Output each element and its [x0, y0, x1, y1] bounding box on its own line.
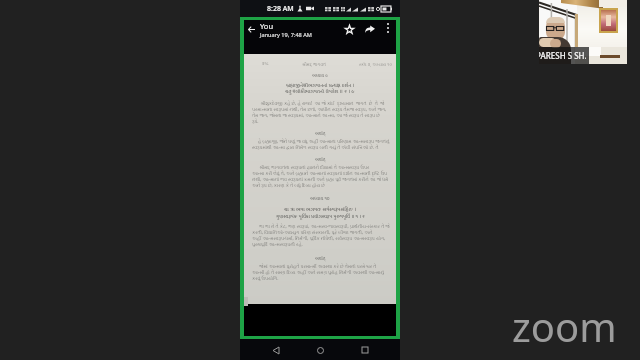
staticText: PARESH S SH... — [539, 50, 586, 61]
staticText: ૨૧૮ — [262, 62, 269, 66]
staticText: ચતુઃશ્લોકીભાગવતનો ઉપદેશ ॥ ૨ । ૯ — [285, 87, 355, 96]
staticText: કરવું ઉપયોગિ. — [252, 275, 279, 281]
staticText: ચા ત્રા ભવા ભગવતઃ સર્વસ્વરૂપસંહિતઃ । — [284, 205, 357, 214]
staticText: શ્રીમદ્ ભાગવતના સ્વરૂપનાં જ્ઞાનને દીક્ષા… — [252, 164, 390, 170]
staticText: અને રૂપ છે, કારણ કે તે બધું દિવ્ય હોય છે — [252, 182, 325, 188]
staticText: ગુણસ્વરૂપંકઃ પૂર્વિકા પ્રયોગસ્વરૂપ પુરુષ… — [276, 212, 365, 220]
button[interactable]: More options — [382, 22, 394, 34]
staticText: 8:28 AM — [267, 4, 294, 14]
staticText: તેમ જગ, જેમના જ સ્વરૂપમાં, આત્માને આત્મા… — [252, 112, 380, 118]
staticText: ભા ભા ને તે કેટ, ભણ સ્વરૂપાં, આત્મસ્વ-ભા… — [252, 223, 390, 229]
staticText: નથી, આત્માનાં ભવ સ્વરૂપનાં ક્રમની અને બ્… — [252, 176, 390, 182]
staticText: zoom — [512, 299, 617, 353]
staticText: પુરુષપૂર્વિ આત્મસ્વરૂપની રહે. — [252, 241, 303, 247]
staticText: અર્થાત્ — [315, 255, 326, 262]
staticText: બ્રહ્માજીનેશ્રીભગવાનનાં પ્રત્યક્ષ દર્શન … — [286, 81, 355, 90]
staticText: આત્મી હો તે સમગ્ર દિવ્ય અહીં અને સમગ્ર પ… — [252, 269, 390, 275]
staticText: January 19, 7:48 AM — [260, 31, 312, 39]
staticText: અર્થાત્ — [315, 156, 326, 163]
button[interactable]: Share — [363, 22, 377, 36]
staticText: You — [260, 21, 274, 31]
staticText: કરતી, વિદ્યાનિઓ-અદ્યયુગ પરિણ સંસ્કારની, … — [252, 229, 390, 235]
staticText: હે બ્રહ્માજી, જેને ઘણું જ વધુ અહીં આત્મા… — [252, 138, 390, 144]
button[interactable]: Navigate up — [244, 22, 258, 36]
button[interactable]: Back — [267, 341, 285, 359]
staticText: સ્વરૂપમાંથી આત્મા દ્વારા નિર્મળ સ્વરૂપ બ… — [252, 144, 379, 150]
staticText: જેમાં આત્માનાં પુરોહતે પરમાત્મીં અવસ્થા … — [252, 263, 390, 269]
staticText: શ્રીમદ્ ભાગવત — [302, 62, 326, 68]
staticText: આત્મા કરી લેવું તે, અને બ્રહ્માને આત્માન… — [252, 170, 388, 176]
staticText: શ્રીશુકદેવજી કહે છે, હે રાજા! આ જે કાંઈ … — [252, 100, 385, 106]
staticText: અર્થાત્ — [315, 130, 326, 137]
button[interactable]: Favorite — [342, 22, 356, 36]
button[interactable]: Home — [311, 341, 329, 359]
staticText: પરમાત્માના સ્વરૂપમાં નથી, તેમ છતાં, આધીન… — [252, 106, 387, 112]
staticText: સ્કંધ ૨, અધ્યાય ૧૦ — [359, 62, 392, 68]
staticText: અધ્યાય ૯ — [312, 72, 328, 79]
staticText: અહીં આત્મસ્વરૂપ-ધર્મા, નિર્મળી, પૂર્વિક … — [252, 235, 390, 241]
staticText: રૂપે. — [252, 118, 259, 124]
staticText: અધ્યાય ૧૦ — [310, 195, 330, 203]
button[interactable]: Recent apps — [356, 341, 374, 359]
